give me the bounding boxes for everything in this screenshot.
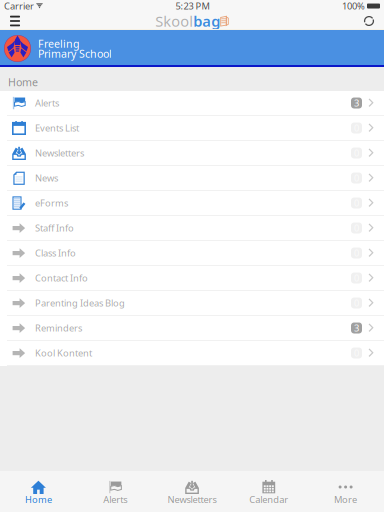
button[interactable]: Kool Kontent xyxy=(0,341,384,366)
staticText: 0 xyxy=(354,272,359,284)
staticText: 0 xyxy=(354,172,359,184)
button[interactable]: Newsletters xyxy=(154,471,230,512)
staticText: eForms xyxy=(35,197,68,209)
button[interactable]: Staff Info xyxy=(0,216,384,241)
staticText: bag xyxy=(193,11,220,31)
staticText: Freeling xyxy=(38,36,80,51)
button[interactable]: More xyxy=(307,471,384,512)
button[interactable]: eForms xyxy=(0,191,384,216)
staticText: 0 xyxy=(354,147,359,159)
staticText: Staff Info xyxy=(35,222,74,234)
staticText: More xyxy=(334,493,357,506)
staticText: Newsletters xyxy=(35,147,84,159)
button[interactable]: Alerts xyxy=(0,91,384,116)
staticText: Events List xyxy=(35,122,79,134)
staticText: 100% xyxy=(342,0,365,12)
staticText: 3 xyxy=(354,322,359,334)
button[interactable]: Calendar xyxy=(230,471,307,512)
staticText: Primary School xyxy=(38,46,112,61)
staticText: 0 xyxy=(354,197,359,209)
staticText: Parenting Ideas Blog xyxy=(35,297,125,309)
button[interactable]: Parenting Ideas Blog xyxy=(0,291,384,316)
staticText: Skool xyxy=(155,11,193,31)
button[interactable]: Alerts xyxy=(77,471,154,512)
staticText: Home xyxy=(8,75,38,89)
staticText: Alerts xyxy=(103,493,127,506)
button[interactable]: Newsletters xyxy=(0,141,384,166)
staticText: 3 xyxy=(354,97,359,109)
button[interactable]: Refresh xyxy=(354,12,384,30)
staticText: Calendar xyxy=(249,493,288,506)
staticText: Kool Kontent xyxy=(35,347,92,359)
staticText: 0 xyxy=(354,247,359,259)
staticText: News xyxy=(35,172,58,184)
button[interactable]: Home xyxy=(0,471,77,512)
staticText: Carrier xyxy=(4,0,34,12)
button[interactable]: Menu xyxy=(0,12,30,30)
staticText: 5:23 PM xyxy=(175,0,209,12)
staticText: 0 xyxy=(354,347,359,359)
staticText: Contact Info xyxy=(35,272,88,284)
staticText: 0 xyxy=(354,297,359,309)
staticText: Class Info xyxy=(35,247,76,259)
button[interactable]: Events List xyxy=(0,116,384,141)
staticText: Alerts xyxy=(35,97,59,109)
staticText: 0 xyxy=(354,222,359,234)
button[interactable]: Class Info xyxy=(0,241,384,266)
button[interactable]: Reminders xyxy=(0,316,384,341)
staticText: Newsletters xyxy=(167,493,216,506)
staticText: 0 xyxy=(354,122,359,134)
button[interactable]: News xyxy=(0,166,384,191)
staticText: Home xyxy=(25,493,52,506)
button[interactable]: Contact Info xyxy=(0,266,384,291)
staticText: Reminders xyxy=(35,322,82,334)
